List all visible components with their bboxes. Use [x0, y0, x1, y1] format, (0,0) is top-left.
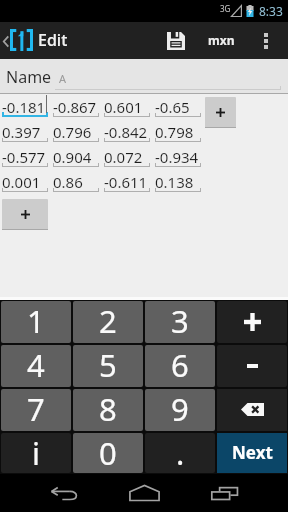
- other: Up: [2, 35, 9, 48]
- staticText: -0.65: [155, 97, 190, 117]
- button[interactable]: 6: [145, 345, 215, 387]
- button[interactable]: Minus: [217, 345, 287, 387]
- staticText: -0.842: [104, 122, 148, 142]
- staticText: 0.601: [104, 97, 143, 117]
- button[interactable]: 0.072: [104, 142, 150, 167]
- button[interactable]: -0.577: [2, 142, 48, 167]
- button[interactable]: Name: [6, 66, 67, 88]
- staticText: 0.397: [2, 122, 41, 142]
- button[interactable]: i: [1, 433, 71, 473]
- button[interactable]: 2: [73, 301, 143, 343]
- button[interactable]: Backspace: [217, 389, 287, 431]
- staticText: 0.86: [53, 172, 83, 192]
- staticText: 0: [99, 433, 117, 472]
- button[interactable]: Next: [217, 433, 287, 473]
- button[interactable]: Back: [24, 474, 104, 512]
- staticText: 3: [171, 301, 189, 342]
- button[interactable]: 4: [1, 345, 71, 387]
- staticText: 0.138: [155, 172, 194, 192]
- button[interactable]: 3: [145, 301, 215, 343]
- button[interactable]: 0.601: [104, 92, 150, 117]
- button[interactable]: .: [145, 433, 215, 473]
- staticText: 8: [99, 389, 117, 430]
- button[interactable]: -0.934: [155, 142, 201, 167]
- staticText: mxn: [208, 32, 235, 48]
- button[interactable]: -0.181: [2, 92, 48, 117]
- button[interactable]: More options: [244, 22, 288, 59]
- staticText: 0.072: [104, 147, 143, 167]
- staticText: A: [59, 71, 67, 86]
- button[interactable]: -0.867: [53, 92, 99, 117]
- staticText: -0.867: [53, 97, 97, 117]
- staticText: -0.934: [155, 147, 199, 167]
- staticText: i: [32, 433, 40, 472]
- button[interactable]: Recent apps: [184, 474, 264, 512]
- staticText: 0.904: [53, 147, 92, 167]
- staticText: Next: [232, 441, 273, 464]
- staticText: 6: [171, 345, 189, 386]
- button[interactable]: 8: [73, 389, 143, 431]
- staticText: 0.001: [2, 172, 41, 192]
- button[interactable]: 0.397: [2, 117, 48, 142]
- button[interactable]: 0.798: [155, 117, 201, 142]
- staticText: 7: [27, 389, 45, 430]
- staticText: 1: [27, 301, 45, 342]
- staticText: .: [176, 433, 185, 472]
- button[interactable]: 0.86: [53, 167, 99, 192]
- button[interactable]: 1: [1, 301, 71, 343]
- staticText: 9: [171, 389, 189, 430]
- staticText: 5: [99, 345, 117, 386]
- staticText: 8:33: [259, 3, 283, 19]
- button[interactable]: Plus: [217, 301, 287, 343]
- button[interactable]: Save: [153, 22, 199, 59]
- staticText: 2: [99, 301, 117, 342]
- button[interactable]: 5: [73, 345, 143, 387]
- button[interactable]: -0.65: [155, 92, 201, 117]
- button[interactable]: 0.796: [53, 117, 99, 142]
- button[interactable]: 0: [73, 433, 143, 473]
- button[interactable]: Add: [205, 97, 236, 128]
- staticText: 0.796: [53, 122, 92, 142]
- button[interactable]: Up: [0, 30, 72, 52]
- staticText: 3G: [220, 3, 231, 14]
- staticText: 4: [27, 345, 45, 386]
- button[interactable]: -0.842: [104, 117, 150, 142]
- staticText: -0.577: [2, 147, 46, 167]
- button[interactable]: 0.904: [53, 142, 99, 167]
- staticText: -0.611: [104, 172, 148, 192]
- staticText: -0.181: [2, 97, 46, 117]
- staticText: 0.798: [155, 122, 194, 142]
- button[interactable]: Add: [2, 199, 48, 230]
- button[interactable]: 0.138: [155, 167, 201, 192]
- button[interactable]: Home: [104, 474, 184, 512]
- button[interactable]: 9: [145, 389, 215, 431]
- staticText: Name: [6, 66, 52, 88]
- button[interactable]: 0.001: [2, 167, 48, 192]
- button[interactable]: -0.611: [104, 167, 150, 192]
- button[interactable]: 7: [1, 389, 71, 431]
- staticText: Edit: [38, 29, 68, 51]
- button[interactable]: mxn: [199, 22, 244, 59]
